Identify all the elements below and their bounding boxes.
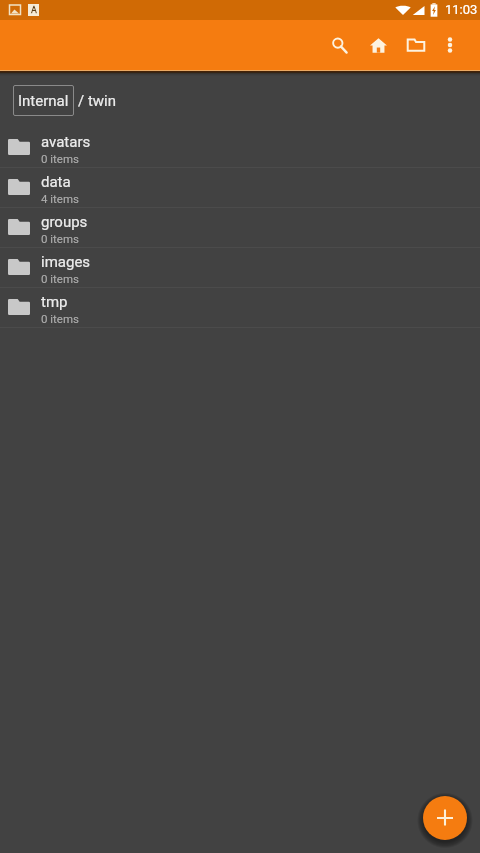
button[interactable]: Home — [358, 25, 398, 65]
button[interactable]: More options — [430, 25, 470, 65]
staticText: images — [41, 253, 91, 271]
button[interactable]: data — [0, 168, 480, 207]
staticText: 0 items — [41, 312, 79, 325]
staticText: 0 items — [41, 232, 79, 245]
button[interactable]: groups — [0, 208, 480, 247]
staticText: groups — [41, 213, 88, 231]
button[interactable]: Add new item — [423, 796, 467, 840]
button[interactable]: / twin — [78, 92, 117, 110]
button[interactable]: avatars — [0, 128, 480, 167]
staticText: 0 items — [41, 272, 79, 285]
button[interactable]: tmp — [0, 288, 480, 327]
staticText: data — [41, 173, 71, 191]
staticText: / twin — [78, 92, 117, 110]
staticText: Internal — [18, 92, 69, 110]
staticText: A — [31, 5, 37, 16]
staticText: 11:03 — [445, 2, 478, 17]
button[interactable]: New folder — [396, 25, 436, 65]
staticText: avatars — [41, 133, 91, 151]
button[interactable]: Search — [319, 25, 359, 65]
button[interactable]: images — [0, 248, 480, 287]
button[interactable]: Internal — [13, 85, 74, 116]
staticText: 0 items — [41, 152, 79, 165]
staticText: tmp — [41, 293, 68, 311]
staticText: 4 items — [41, 192, 79, 205]
